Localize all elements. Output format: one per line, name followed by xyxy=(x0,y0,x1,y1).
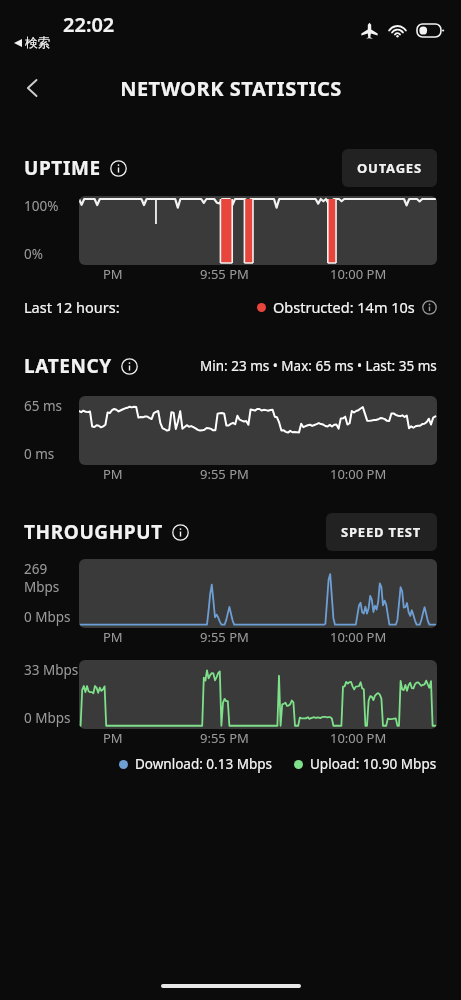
staticText: Obstructed: 14m 10s xyxy=(273,297,415,317)
staticText: 0 Mbps xyxy=(24,608,71,626)
staticText: PM xyxy=(103,465,123,483)
staticText: SPEED TEST xyxy=(341,523,422,541)
staticText: 100% xyxy=(24,197,59,215)
staticText: 22:02 xyxy=(63,11,115,38)
staticText: 10:00 PM xyxy=(330,628,387,646)
staticText: 9:55 PM xyxy=(200,628,249,646)
staticText: 65 ms xyxy=(24,397,63,415)
button[interactable]: Throughput info xyxy=(172,524,189,541)
staticText: OUTAGES xyxy=(357,159,422,177)
button[interactable]: Back xyxy=(14,69,52,107)
staticText: UPTIME xyxy=(24,155,101,181)
button[interactable]: SPEED TEST xyxy=(326,513,437,551)
staticText: 9:55 PM xyxy=(200,729,249,747)
staticText: 9:55 PM xyxy=(200,265,249,283)
staticText: 33 Mbps xyxy=(24,661,79,679)
staticText: THROUGHPUT xyxy=(24,519,163,545)
button[interactable]: OUTAGES xyxy=(342,149,437,187)
staticText: 10:00 PM xyxy=(330,465,387,483)
staticText: 269 Mbps xyxy=(24,560,79,596)
staticText: 10:00 PM xyxy=(330,729,387,747)
staticText: 0 Mbps xyxy=(24,709,71,727)
staticText: LATENCY xyxy=(24,353,112,379)
button[interactable]: Latency info xyxy=(121,358,138,375)
button[interactable]: Uptime info xyxy=(110,160,127,177)
staticText: PM xyxy=(103,265,123,283)
staticText: PM xyxy=(103,729,123,747)
staticText: Download: 0.13 Mbps xyxy=(135,755,272,773)
staticText: PM xyxy=(103,628,123,646)
staticText: 9:55 PM xyxy=(200,465,249,483)
staticText: 0 ms xyxy=(24,445,55,463)
staticText: Min: 23 ms • Max: 65 ms • Last: 35 ms xyxy=(200,357,437,375)
staticText: Last 12 hours: xyxy=(24,297,120,317)
staticText: 0% xyxy=(24,245,43,263)
staticText: NETWORK STATISTICS xyxy=(120,75,342,102)
staticText: 検索 xyxy=(25,35,50,51)
staticText: 10:00 PM xyxy=(330,265,387,283)
button[interactable]: Obstruction info xyxy=(422,300,437,315)
staticText: Upload: 10.90 Mbps xyxy=(310,755,437,773)
